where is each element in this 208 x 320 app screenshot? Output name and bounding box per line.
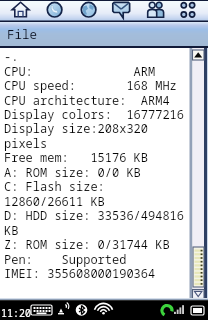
staticText: -. bbox=[4, 48, 19, 64]
staticText: 11:20 bbox=[1, 306, 31, 320]
button[interactable]: Phone bbox=[45, 0, 65, 21]
button[interactable]: Home bbox=[11, 0, 31, 21]
button[interactable]: Apps bbox=[178, 0, 198, 21]
staticText: Display colors: 16777216 bbox=[4, 106, 185, 122]
staticText: D: HDD size: 33536/494816 bbox=[4, 207, 185, 223]
staticText: CPU speed: 168 MHz bbox=[4, 77, 177, 93]
staticText: File bbox=[7, 26, 38, 43]
staticText: C: Flash size: bbox=[4, 178, 105, 194]
button[interactable]: File bbox=[2, 25, 44, 44]
button[interactable]: Scroll bbox=[189, 48, 208, 300]
button[interactable]: Contacts bbox=[145, 0, 167, 21]
staticText: pixels bbox=[4, 135, 48, 151]
button[interactable]: Internet bbox=[79, 0, 99, 21]
button[interactable]: Messages bbox=[111, 0, 133, 21]
staticText: CPU architecture: ARM4 bbox=[4, 92, 170, 108]
staticText: Z: ROM size: 0/31744 KB bbox=[4, 236, 170, 252]
staticText: Pen: Supported bbox=[4, 251, 127, 267]
staticText: Free mem: 15176 KB bbox=[4, 149, 149, 165]
staticText: IMEI: 355608000190364 bbox=[4, 265, 156, 281]
staticText: Display size:208x320 bbox=[4, 120, 149, 136]
staticText: CPU: ARM bbox=[4, 63, 156, 79]
staticText: A: ROM size: 0/0 KB bbox=[4, 164, 141, 180]
staticText: KB bbox=[4, 222, 19, 238]
staticText: 12860/26611 KB bbox=[4, 193, 105, 209]
